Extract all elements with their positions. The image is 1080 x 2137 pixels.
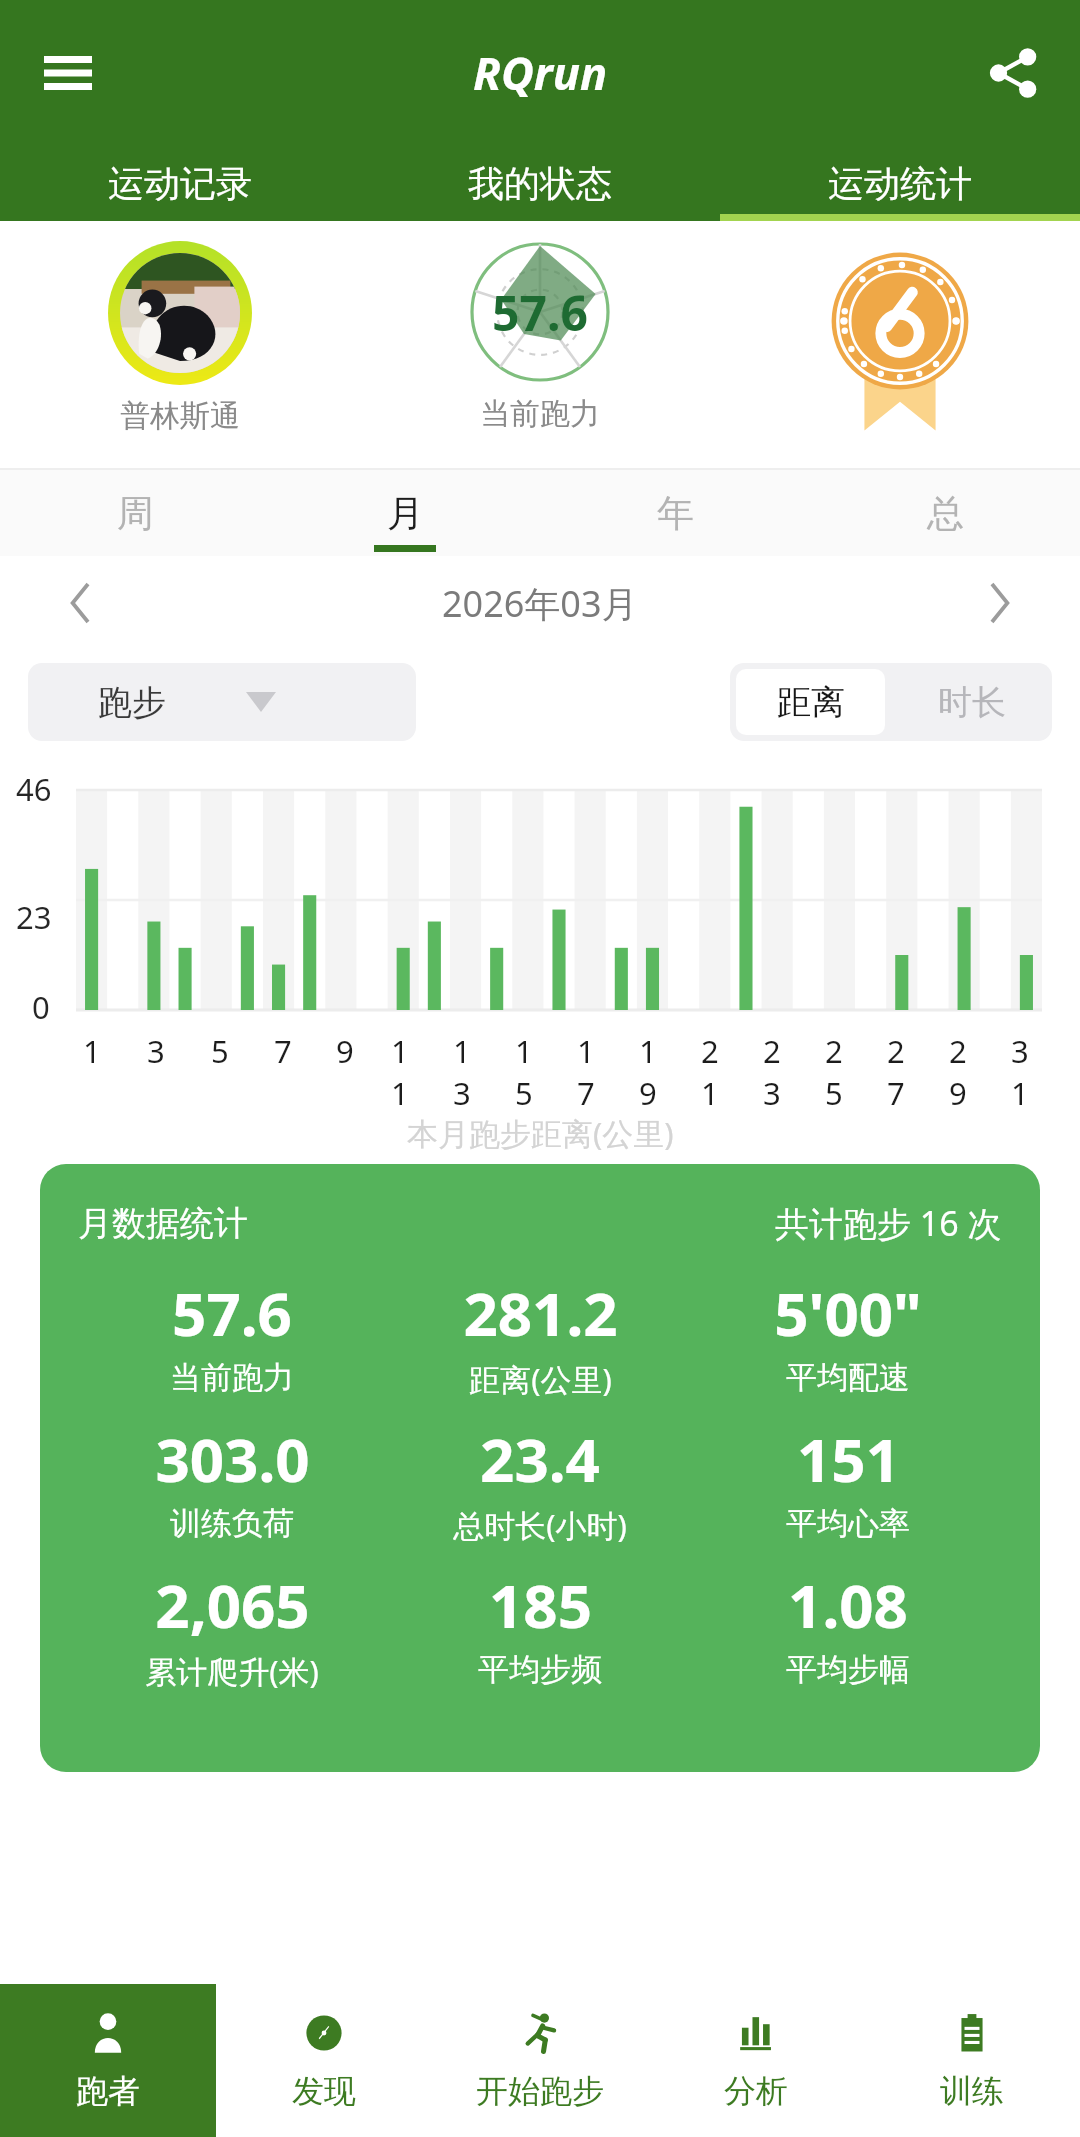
staticText: 281.2 [463, 1272, 618, 1354]
staticText: 25 [825, 1030, 856, 1114]
staticText: 13 [453, 1030, 484, 1114]
button[interactable]: 总 [810, 470, 1080, 556]
staticText: 23.4 [480, 1418, 600, 1500]
staticText: 29 [949, 1030, 980, 1114]
button[interactable]: 月数据统计 [40, 1164, 1040, 1772]
staticText: 17 [577, 1030, 608, 1114]
staticText: 平均配速 [786, 1358, 910, 1397]
button[interactable]: 年 [540, 470, 810, 556]
staticText: 月 [387, 490, 424, 537]
button[interactable]: 57.6 [360, 241, 720, 433]
staticText: 开始跑步 [476, 2071, 604, 2111]
staticText: 运动统计 [828, 161, 972, 206]
staticText: 57.6 [172, 1272, 292, 1354]
button[interactable]: 分析 [648, 1984, 864, 2137]
button[interactable]: 距离 [736, 669, 885, 735]
staticText: 我的状态 [468, 161, 612, 206]
staticText: 31 [1011, 1030, 1042, 1114]
button[interactable]: Next month [968, 572, 1030, 634]
staticText: 151 [797, 1418, 900, 1500]
button[interactable]: 训练 [864, 1984, 1080, 2137]
staticText: 运动记录 [108, 161, 252, 206]
staticText: 跑步 [98, 681, 166, 724]
staticText: 当前跑力 [170, 1358, 294, 1397]
staticText: 距离(公里) [469, 1358, 612, 1400]
staticText: 2026年03月 [442, 579, 638, 628]
button[interactable]: 跑者 [0, 1984, 216, 2137]
staticText: 月数据统计 [78, 1202, 248, 1245]
staticText: 21 [701, 1030, 732, 1114]
staticText: 跑者 [76, 2071, 140, 2111]
button[interactable]: 时长 [891, 663, 1052, 741]
staticText: 2,065 [155, 1564, 310, 1646]
staticText: 27 [887, 1030, 918, 1114]
staticText: 周 [117, 490, 154, 537]
staticText: 0 [32, 986, 50, 1028]
button[interactable]: 周 [0, 470, 270, 556]
staticText: 本月跑步距离(公里) [407, 1112, 674, 1154]
staticText: 5'00" [774, 1272, 922, 1354]
staticText: 发现 [292, 2071, 356, 2111]
button[interactable]: Menu [26, 31, 110, 115]
button[interactable]: Previous month [50, 572, 112, 634]
staticText: 23 [16, 896, 52, 938]
button[interactable] [720, 241, 1080, 413]
staticText: 7 [274, 1030, 292, 1072]
staticText: 累计爬升(米) [145, 1650, 319, 1692]
staticText: 训练负荷 [170, 1504, 294, 1543]
button[interactable]: 普林斯通 [0, 241, 360, 435]
staticText: 共计跑步 16 次 [775, 1200, 1002, 1246]
staticText: RQrun [473, 42, 608, 103]
staticText: 当前跑力 [480, 395, 600, 433]
staticText: 3 [147, 1030, 165, 1072]
button[interactable]: Share [968, 29, 1056, 117]
staticText: 分析 [724, 2071, 788, 2111]
button[interactable]: 月 [270, 470, 540, 556]
staticText: 总时长(小时) [453, 1504, 627, 1546]
staticText: 普林斯通 [120, 397, 240, 435]
staticText: 平均心率 [786, 1504, 910, 1543]
staticText: 11 [391, 1030, 422, 1114]
staticText: 303.0 [155, 1418, 310, 1500]
button[interactable]: 我的状态 [360, 145, 720, 221]
staticText: 57.6 [492, 280, 588, 345]
staticText: 185 [489, 1564, 592, 1646]
staticText: 距离 [777, 681, 845, 724]
staticText: 5 [211, 1030, 229, 1072]
staticText: 1.08 [788, 1564, 908, 1646]
staticText: 平均步频 [478, 1650, 602, 1689]
button[interactable]: 发现 [216, 1984, 432, 2137]
staticText: 9 [336, 1030, 354, 1072]
button[interactable]: 跑步 [28, 663, 416, 741]
staticText: 总 [927, 490, 964, 537]
staticText: 23 [763, 1030, 794, 1114]
button[interactable]: 运动统计 [720, 145, 1080, 221]
staticText: 46 [16, 768, 52, 810]
staticText: 15 [515, 1030, 546, 1114]
staticText: 1 [83, 1030, 101, 1072]
staticText: 19 [639, 1030, 670, 1114]
staticText: 训练 [940, 2071, 1004, 2111]
staticText: 年 [657, 490, 694, 537]
button[interactable]: 运动记录 [0, 145, 360, 221]
staticText: 平均步幅 [786, 1650, 910, 1689]
button[interactable]: 开始跑步 [432, 1984, 648, 2137]
staticText: 时长 [938, 681, 1006, 724]
